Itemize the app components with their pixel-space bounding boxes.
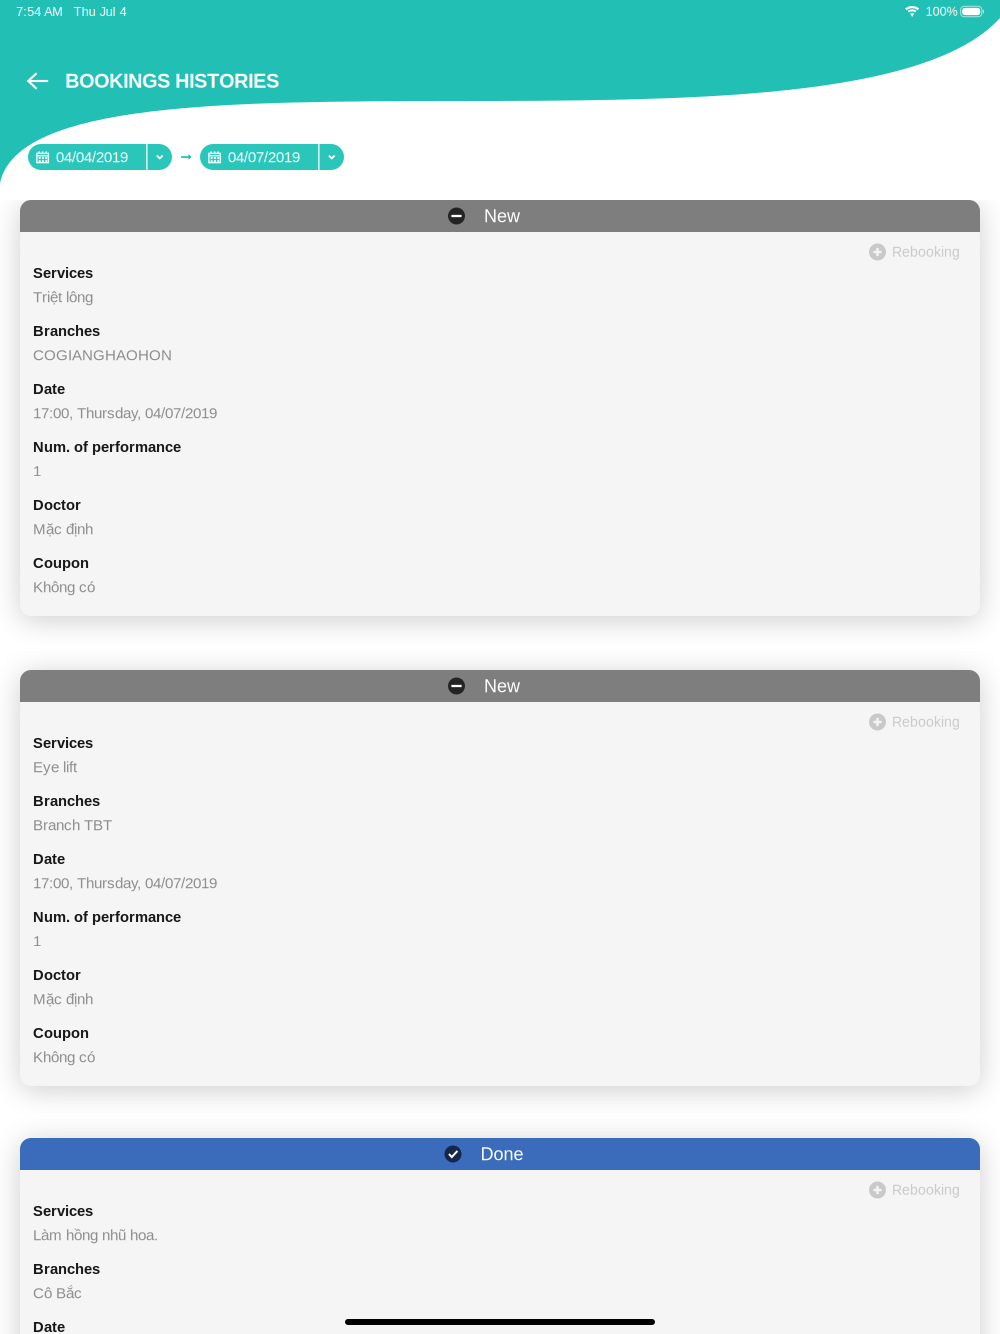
staticText: Date — [33, 851, 65, 867]
staticText: Branches — [33, 793, 100, 809]
staticText: Doctor — [33, 967, 81, 983]
staticText: 04/07/2019 — [228, 149, 300, 165]
staticText: Done — [480, 1144, 523, 1164]
staticText: Date — [33, 1319, 65, 1334]
staticText: New — [484, 206, 520, 226]
staticText: Không có — [33, 1049, 95, 1065]
staticText: Eye lift — [33, 759, 77, 775]
staticText: Rebooking — [892, 1182, 960, 1198]
staticText: Cô Bắc — [33, 1285, 82, 1301]
button[interactable]: 04/04/2019 — [28, 144, 172, 170]
staticText: Mặc định — [33, 991, 93, 1007]
staticText: BOOKINGS HISTORIES — [65, 70, 279, 92]
staticText: 1 — [33, 463, 41, 479]
staticText: Làm hồng nhũ hoa. — [33, 1227, 158, 1243]
staticText: Services — [33, 735, 93, 751]
staticText: Triệt lông — [33, 289, 93, 305]
staticText: Rebooking — [892, 244, 960, 260]
staticText: 04/04/2019 — [56, 149, 128, 165]
staticText: New — [484, 676, 520, 696]
button[interactable]: 04/07/2019 — [200, 144, 344, 170]
staticText: 17:00, Thursday, 04/07/2019 — [33, 405, 217, 421]
staticText: Branches — [33, 1261, 100, 1277]
staticText: Coupon — [33, 555, 89, 571]
staticText: Services — [33, 1203, 93, 1219]
staticText: COGIANGHAOHON — [33, 347, 172, 363]
staticText: Rebooking — [892, 714, 960, 730]
staticText: Date — [33, 381, 65, 397]
staticText: 1 — [33, 933, 41, 949]
staticText: Thu Jul 4 — [73, 4, 126, 19]
staticText: Branches — [33, 323, 100, 339]
staticText: Không có — [33, 579, 95, 595]
button[interactable]: Rebooking — [869, 243, 960, 261]
button[interactable]: Back — [0, 59, 65, 103]
staticText: Doctor — [33, 497, 81, 513]
staticText: Coupon — [33, 1025, 89, 1041]
staticText: 7:54 AM — [16, 4, 63, 19]
staticText: Services — [33, 265, 93, 281]
staticText: 17:00, Thursday, 04/07/2019 — [33, 875, 217, 891]
button[interactable]: Rebooking — [869, 713, 960, 731]
staticText: Num. of performance — [33, 439, 181, 455]
staticText: Branch TBT — [33, 817, 112, 833]
staticText: Num. of performance — [33, 909, 181, 925]
button[interactable]: Rebooking — [869, 1181, 960, 1199]
staticText: 100% — [926, 5, 958, 18]
staticText: Mặc định — [33, 521, 93, 537]
